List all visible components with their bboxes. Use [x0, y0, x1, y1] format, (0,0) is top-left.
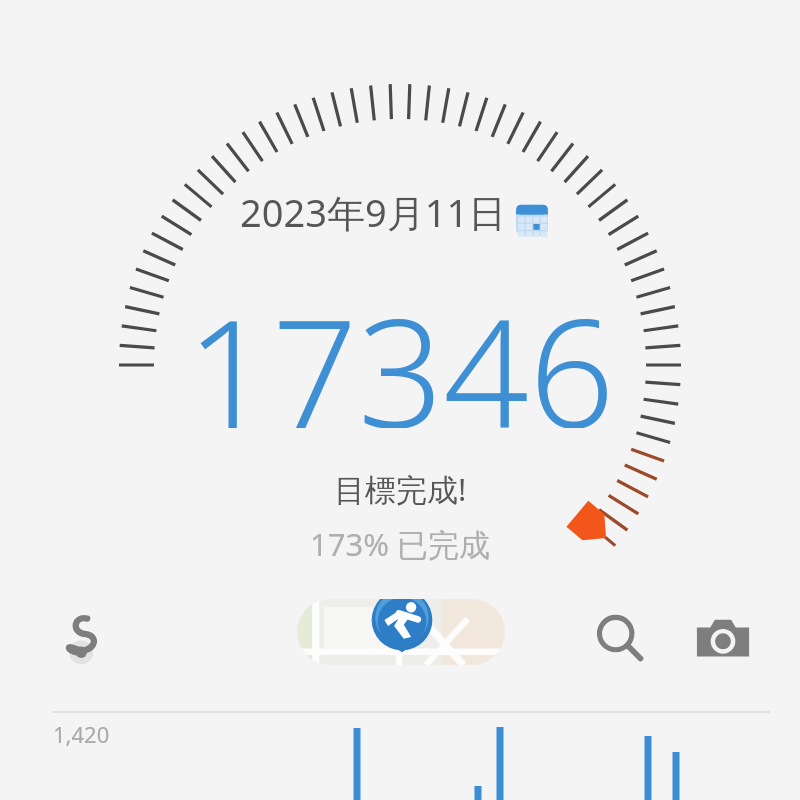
staticText: 173% 已完成: [310, 523, 491, 565]
button[interactable]: Route: [35, 594, 125, 684]
staticText: 2023年9月11日: [240, 186, 507, 238]
button[interactable]: Start run: [297, 599, 505, 665]
staticText: 1,420: [53, 719, 110, 749]
button[interactable]: Search: [575, 594, 665, 684]
button[interactable]: Camera: [678, 594, 768, 684]
button[interactable]: 2023年9月11日: [240, 183, 560, 241]
staticText: 17346: [186, 268, 615, 428]
staticText: 目標完成!: [334, 468, 467, 510]
